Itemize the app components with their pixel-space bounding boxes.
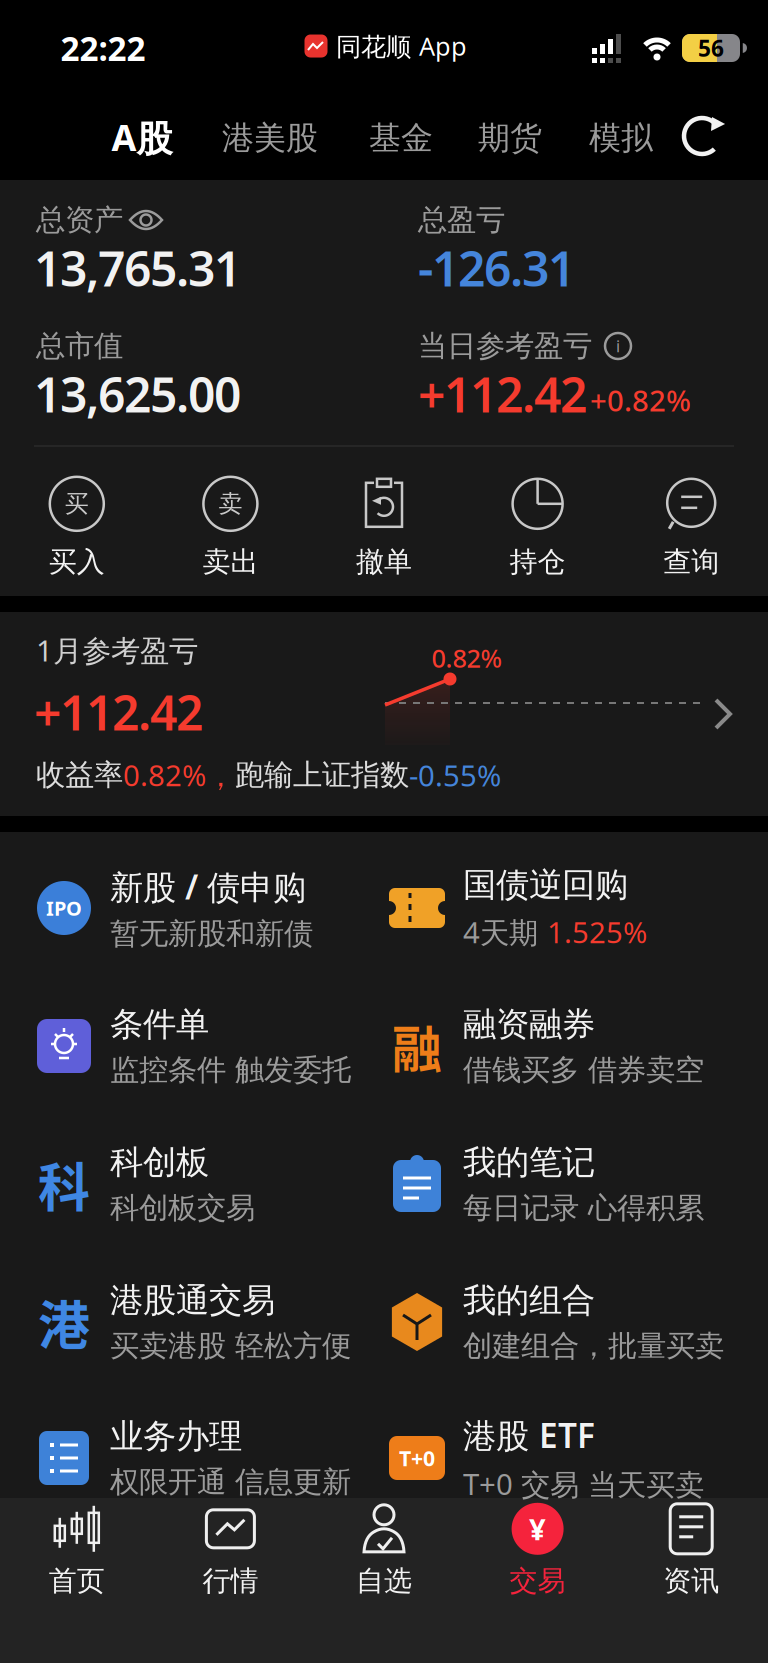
staticText: ¥	[529, 1509, 546, 1548]
button[interactable]: 期货	[478, 118, 542, 158]
staticText: 监控条件 触发委托	[110, 1052, 351, 1088]
staticText: 13,765.31	[34, 236, 241, 300]
staticText: i	[616, 335, 620, 357]
staticText: 56	[698, 33, 724, 63]
staticText: 自选	[356, 1564, 412, 1598]
button[interactable]: 查询	[663, 477, 719, 579]
staticText: 首页	[49, 1564, 105, 1598]
staticText: 港美股	[222, 118, 318, 158]
staticText: 收益率	[36, 757, 123, 793]
staticText: 卖	[218, 489, 242, 519]
button[interactable]: 科	[36, 1142, 396, 1226]
staticText: 期货	[478, 118, 542, 158]
staticText: 1.525%	[547, 912, 647, 951]
button[interactable]: 模拟	[589, 118, 653, 158]
staticText: 持仓	[510, 545, 566, 579]
staticText: 融	[392, 1010, 442, 1082]
button[interactable]: 隐藏金额	[128, 208, 164, 232]
staticText: 查询	[663, 545, 719, 579]
button[interactable]: A股	[111, 113, 172, 161]
staticText: 13,625.00	[34, 362, 241, 426]
staticText: 0.82%，	[123, 755, 235, 794]
staticText: 行情	[202, 1564, 258, 1598]
button[interactable]: 我的笔记	[389, 1142, 753, 1226]
staticText: 总盈亏	[418, 202, 505, 238]
staticText: 业务办理	[110, 1416, 242, 1457]
staticText: 条件单	[110, 1004, 209, 1045]
staticText: 买	[65, 489, 89, 519]
staticText: +112.42	[418, 362, 587, 426]
staticText: 融资融券	[463, 1004, 595, 1045]
staticText: 当日参考盈亏	[418, 328, 592, 364]
staticText: 模拟	[589, 118, 653, 158]
staticText: 我的组合	[463, 1280, 595, 1321]
staticText: 基金	[369, 118, 433, 158]
button[interactable]: 首页	[49, 1504, 105, 1598]
staticText: 4天期	[463, 912, 547, 951]
staticText: 港股 ETF	[463, 1413, 595, 1457]
staticText: 同花顺 App	[336, 29, 467, 63]
staticText: 暂无新股和新债	[110, 916, 313, 952]
button[interactable]: 港美股	[222, 118, 318, 158]
staticText: 权限开通 信息更新	[110, 1464, 351, 1500]
staticText: +112.42	[34, 680, 203, 744]
staticText: 撤单	[356, 545, 412, 579]
staticText: -0.55%	[409, 755, 501, 794]
button[interactable]: 说明	[605, 333, 631, 359]
staticText: 我的笔记	[463, 1142, 595, 1183]
staticText: 国债逆回购	[463, 865, 628, 905]
staticText: 创建组合，批量买卖	[463, 1328, 724, 1364]
staticText: 交易	[510, 1564, 566, 1598]
button[interactable]: 港	[36, 1280, 396, 1364]
staticText: 买入	[49, 545, 105, 579]
button[interactable]: IPO	[36, 864, 396, 952]
button[interactable]: 买	[49, 477, 105, 579]
staticText: 借钱买多 借券卖空	[463, 1052, 704, 1088]
button[interactable]: 资讯	[663, 1504, 719, 1598]
staticText: 0.82%	[431, 641, 502, 675]
staticText: 科创板交易	[110, 1190, 255, 1226]
staticText: 买卖港股 轻松方便	[110, 1328, 351, 1364]
staticText: 港	[38, 1284, 90, 1360]
button[interactable]: ¥	[510, 1504, 566, 1598]
staticText: 卖出	[202, 545, 258, 579]
button[interactable]: 刷新	[678, 112, 726, 160]
button[interactable]: 持仓	[510, 477, 566, 579]
button[interactable]: 卖	[202, 477, 258, 579]
staticText: 总市值	[36, 328, 123, 364]
staticText: 每日记录 心得积累	[463, 1190, 704, 1226]
staticText: T+0 交易 当天买卖	[463, 1464, 704, 1503]
button[interactable]: 融	[389, 1004, 753, 1088]
staticText: IPO	[46, 895, 82, 921]
staticText: 22:22	[60, 26, 145, 70]
staticText: A股	[111, 113, 172, 161]
button[interactable]: 条件单	[36, 1004, 396, 1088]
staticText: 科	[38, 1146, 90, 1222]
staticText: 跑输上证指数	[235, 757, 409, 793]
button[interactable]: 1月参考盈亏	[0, 612, 768, 816]
button[interactable]: 我的组合	[389, 1280, 753, 1364]
staticText: 科创板	[110, 1142, 209, 1183]
staticText: 资讯	[663, 1564, 719, 1598]
staticText: -126.31	[418, 236, 575, 300]
staticText: 总资产	[36, 202, 123, 238]
staticText: +0.82%	[590, 380, 691, 419]
staticText: T+0	[399, 1444, 435, 1472]
staticText: 1月参考盈亏	[36, 630, 198, 669]
button[interactable]: T+0	[389, 1413, 753, 1503]
staticText: 港股通交易	[110, 1280, 275, 1321]
button[interactable]: 行情	[202, 1504, 258, 1598]
button[interactable]: 自选	[356, 1504, 412, 1598]
button[interactable]: 基金	[369, 118, 433, 158]
button[interactable]: 国债逆回购	[389, 865, 753, 951]
button[interactable]: 撤单	[356, 477, 412, 579]
staticText: 新股 / 债申购	[110, 864, 306, 909]
button[interactable]: 业务办理	[36, 1416, 396, 1500]
